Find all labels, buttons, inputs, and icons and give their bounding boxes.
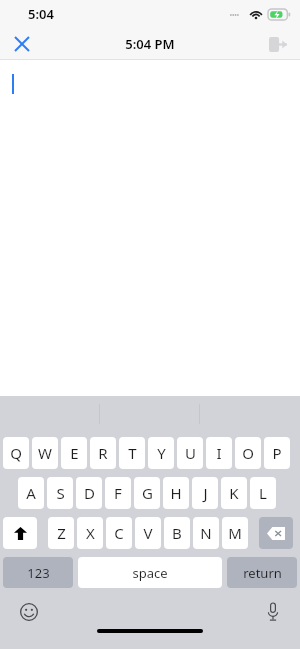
button[interactable]: X [77,517,103,549]
staticText: Y [157,443,166,463]
staticText: A [26,483,36,503]
button[interactable]: F [105,477,131,509]
staticText: I [216,443,222,463]
staticText: U [185,443,196,463]
button[interactable]: C [106,517,132,549]
button[interactable]: O [235,437,261,469]
button[interactable]: D [76,477,102,509]
button[interactable]: Shift [3,517,37,549]
button[interactable]: N [193,517,219,549]
button[interactable]: B [164,517,190,549]
staticText: 123 [27,564,50,582]
button[interactable]: S [47,477,73,509]
staticText: J [203,483,208,503]
button[interactable]: A [18,477,44,509]
staticText: B [172,523,182,543]
staticText: Q [10,443,22,463]
button[interactable]: K [221,477,247,509]
button[interactable]: J [192,477,218,509]
button[interactable]: Send [262,28,294,60]
button[interactable]: Close [6,28,38,60]
button[interactable]: return [227,557,297,588]
staticText: K [229,483,239,503]
staticText: C [114,523,124,543]
staticText: G [142,483,153,503]
button[interactable]: T [119,437,145,469]
staticText: S [56,483,65,503]
button[interactable]: H [163,477,189,509]
staticText: return [243,564,282,582]
button[interactable]: M [222,517,248,549]
button[interactable]: Backspace [259,517,293,549]
staticText: W [38,443,52,463]
staticText: P [272,443,282,463]
button[interactable]: space [78,557,222,588]
staticText: space [132,564,168,582]
button[interactable]: V [135,517,161,549]
button[interactable]: Dictation [258,597,288,627]
button[interactable]: 123 [3,557,73,588]
staticText: 5:04 PM [125,35,175,53]
button[interactable]: E [61,437,87,469]
button[interactable]: L [250,477,276,509]
button[interactable]: R [90,437,116,469]
staticText: O [242,443,254,463]
staticText: Z [57,523,66,543]
staticText: L [259,483,267,503]
button[interactable]: Q [3,437,29,469]
button[interactable]: I [206,437,232,469]
staticText: H [170,483,182,503]
staticText: T [128,443,137,463]
button[interactable]: Z [48,517,74,549]
staticText: E [70,443,79,463]
button[interactable]: W [32,437,58,469]
staticText: V [143,523,153,543]
staticText: 5:04 [28,5,54,23]
button[interactable]: Emoji [14,597,44,627]
staticText: R [98,443,108,463]
staticText: N [200,523,212,543]
staticText: M [228,523,242,543]
staticText: X [86,523,95,543]
staticText: F [114,483,122,503]
button[interactable]: G [134,477,160,509]
button[interactable]: P [264,437,290,469]
button[interactable]: U [177,437,203,469]
button[interactable]: Y [148,437,174,469]
staticText: D [84,483,95,503]
